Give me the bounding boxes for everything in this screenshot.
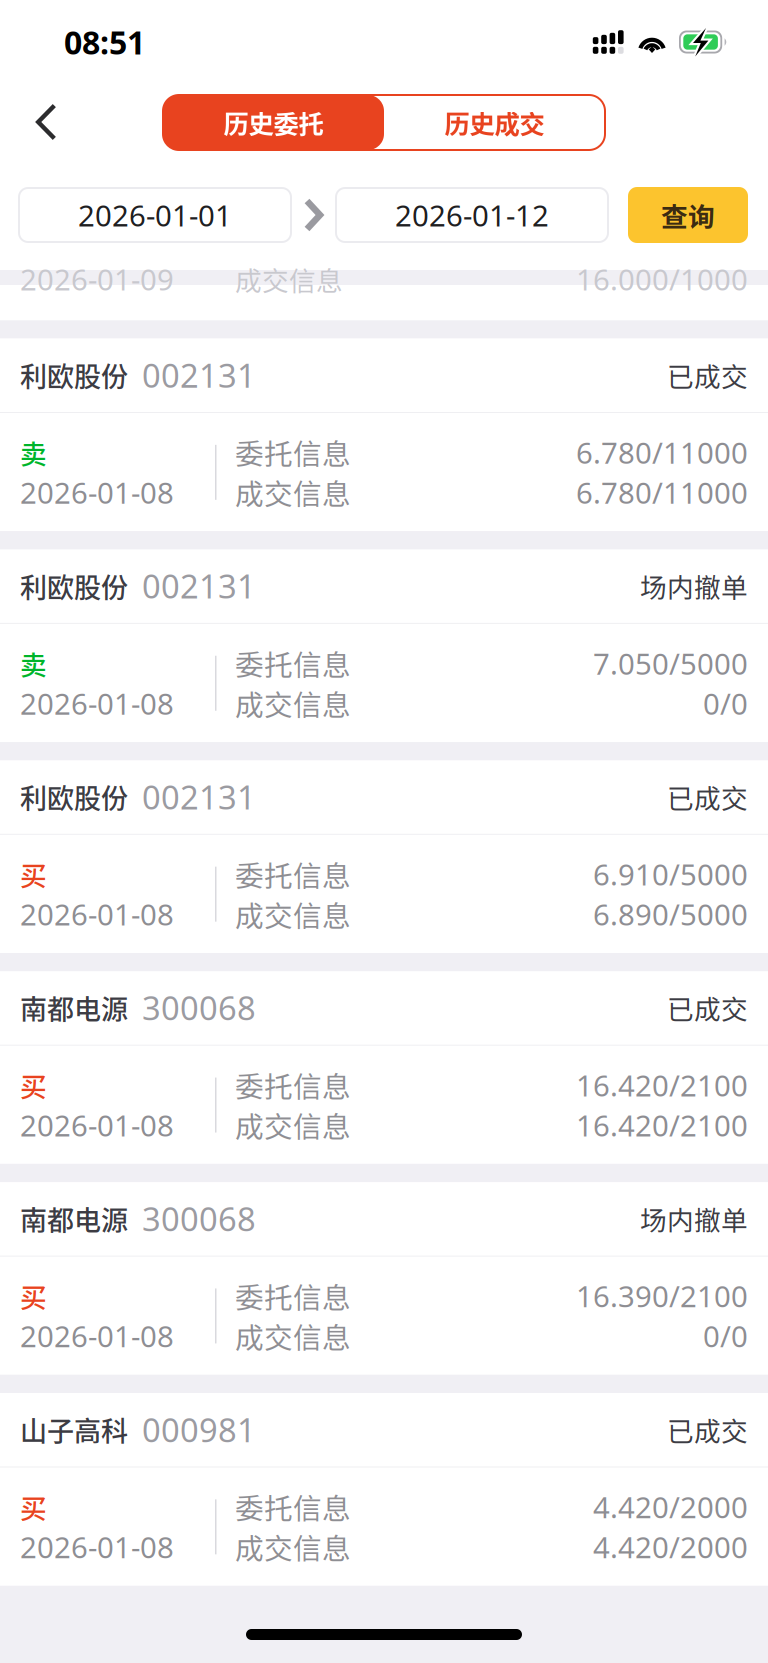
staticText: 6.780/11000: [576, 432, 748, 472]
staticText: 7.050/5000: [593, 643, 748, 683]
staticText: 委托信息: [235, 1275, 351, 1317]
button[interactable]: 利欧股份: [0, 760, 768, 953]
staticText: 16.390/2100: [576, 1276, 748, 1316]
staticText: 2026-01-08: [20, 894, 174, 934]
staticText: 16.420/2100: [576, 1065, 748, 1105]
staticText: 4.420/2000: [593, 1487, 748, 1527]
staticText: 2026-01-01: [78, 195, 232, 235]
staticText: 6.890/5000: [593, 894, 748, 934]
staticText: 2026-01-08: [20, 1105, 174, 1145]
staticText: 委托信息: [235, 432, 351, 473]
staticText: 08:51: [64, 20, 145, 64]
staticText: 已成交: [667, 777, 748, 816]
staticText: 山子高科: [20, 1410, 128, 1449]
staticText: 16.000/1000: [576, 259, 748, 299]
staticText: 2026-01-08: [20, 472, 174, 512]
staticText: 买: [20, 1487, 47, 1526]
staticText: 2026-01-08: [20, 1527, 174, 1567]
staticText: 南都电源: [20, 988, 128, 1027]
button[interactable]: 历史委托: [163, 95, 384, 150]
button[interactable]: 山子高科: [0, 1393, 768, 1586]
staticText: 已成交: [667, 1410, 748, 1449]
button[interactable]: 2026-01-12: [336, 188, 608, 242]
staticText: 002131: [142, 353, 256, 397]
staticText: 0/0: [703, 683, 748, 723]
staticText: 002131: [142, 564, 256, 608]
staticText: 0/0: [703, 1316, 748, 1356]
staticText: 利欧股份: [20, 355, 128, 395]
staticText: 买: [20, 1277, 47, 1315]
staticText: 2026-01-12: [395, 195, 549, 235]
staticText: 成交信息: [235, 260, 343, 298]
button[interactable]: Back: [14, 95, 70, 150]
button[interactable]: 南都电源: [0, 971, 768, 1164]
staticText: 成交信息: [235, 472, 351, 513]
staticText: 6.910/5000: [593, 854, 748, 894]
staticText: 利欧股份: [20, 777, 128, 816]
staticText: 买: [20, 855, 47, 893]
staticText: 2026-01-08: [20, 683, 174, 723]
button[interactable]: 南都电源: [0, 1182, 768, 1375]
staticText: 历史成交: [444, 104, 544, 141]
staticText: 000981: [142, 1407, 256, 1452]
staticText: 成交信息: [235, 1526, 351, 1568]
staticText: 300068: [142, 985, 256, 1030]
button[interactable]: 利欧股份: [0, 338, 768, 531]
button[interactable]: 2026-01-01: [19, 188, 291, 242]
staticText: 场内撤单: [640, 1199, 748, 1238]
staticText: 卖: [20, 433, 47, 472]
staticText: 委托信息: [235, 1486, 351, 1528]
staticText: 2026-01-08: [20, 1316, 174, 1356]
staticText: 成交信息: [235, 893, 351, 935]
button[interactable]: 查询: [628, 187, 748, 243]
staticText: 300068: [142, 1196, 256, 1241]
staticText: 已成交: [667, 988, 748, 1027]
staticText: 委托信息: [235, 853, 351, 895]
staticText: 已成交: [667, 356, 748, 394]
staticText: 卖: [20, 644, 47, 682]
button[interactable]: 利欧股份: [0, 549, 768, 742]
staticText: 6.780/11000: [576, 472, 748, 512]
staticText: 利欧股份: [20, 566, 128, 605]
staticText: 买: [20, 1066, 47, 1104]
staticText: 委托信息: [235, 1064, 351, 1106]
staticText: 成交信息: [235, 1104, 351, 1146]
staticText: 成交信息: [235, 1315, 351, 1357]
staticText: 4.420/2000: [593, 1527, 748, 1567]
staticText: 16.420/2100: [576, 1105, 748, 1145]
staticText: 南都电源: [20, 1199, 128, 1238]
staticText: 002131: [142, 775, 256, 819]
button[interactable]: 历史成交: [384, 95, 605, 150]
staticText: 查询: [661, 196, 715, 234]
staticText: 历史委托: [223, 104, 323, 141]
staticText: 委托信息: [235, 642, 351, 684]
staticText: 2026-01-09: [20, 259, 174, 299]
staticText: 场内撤单: [640, 567, 748, 605]
staticText: 成交信息: [235, 682, 351, 724]
